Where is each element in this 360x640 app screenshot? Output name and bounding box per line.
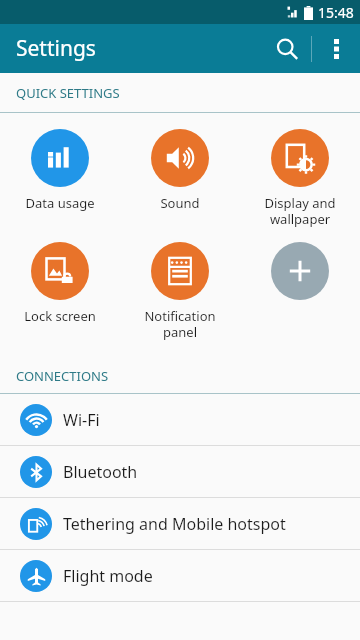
staticText: QUICK SETTINGS — [16, 84, 120, 102]
button[interactable]: Notification panel — [120, 242, 240, 340]
staticText: Lock screen — [24, 307, 96, 325]
button[interactable]: Sound — [120, 129, 240, 212]
staticText: Tethering and Mobile hotspot — [63, 513, 286, 535]
button[interactable]: Bluetooth — [0, 446, 360, 497]
button[interactable]: Add shortcut — [240, 242, 360, 300]
staticText: Notification panel — [144, 307, 216, 340]
button[interactable]: Flight mode — [0, 550, 360, 601]
staticText: CONNECTIONS — [16, 367, 109, 385]
button[interactable]: Lock screen — [0, 242, 120, 325]
staticText: Wi-Fi — [63, 409, 100, 431]
staticText: Bluetooth — [63, 461, 138, 483]
button[interactable]: Tethering and Mobile hotspot — [0, 498, 360, 549]
button[interactable]: Data usage — [0, 129, 120, 212]
staticText: Data usage — [25, 194, 95, 212]
button[interactable]: Display and wallpaper — [240, 129, 360, 227]
staticText: Flight mode — [63, 565, 153, 587]
button[interactable]: Search — [263, 25, 311, 73]
staticText: Display and wallpaper — [264, 194, 336, 227]
staticText: Sound — [160, 194, 200, 212]
button[interactable]: Wi-Fi — [0, 394, 360, 445]
staticText: 15:48 — [318, 3, 354, 22]
button[interactable]: More options — [312, 25, 360, 73]
staticText: Settings — [16, 34, 96, 63]
